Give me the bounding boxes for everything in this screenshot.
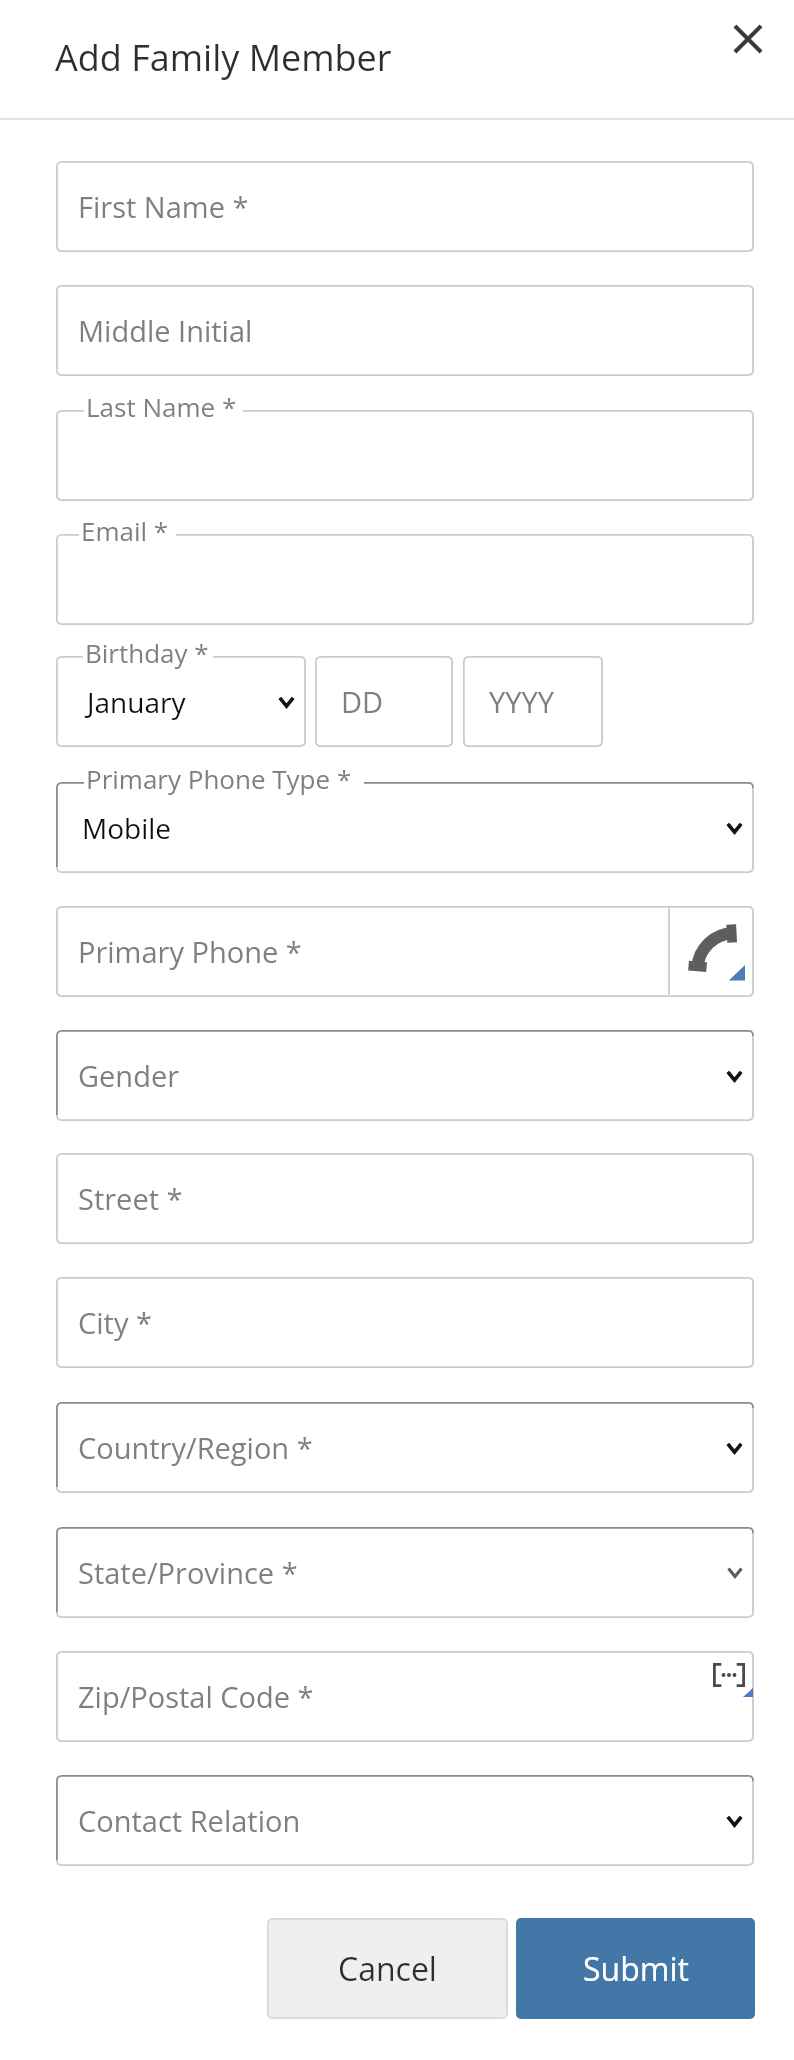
staticText: January: [87, 683, 186, 721]
staticText: Birthday *: [85, 635, 209, 670]
button[interactable]: [56, 410, 754, 501]
staticText: Submit: [583, 1947, 689, 1991]
button[interactable]: YYYY: [463, 656, 603, 747]
button[interactable]: First Name *: [56, 161, 754, 252]
staticText: Middle Initial: [78, 311, 253, 350]
button[interactable]: Middle Initial: [56, 285, 754, 376]
staticText: Country/Region *: [78, 1428, 313, 1467]
staticText: Gender: [78, 1056, 180, 1095]
button[interactable]: [56, 534, 754, 625]
button[interactable]: Country/Region *: [56, 1402, 754, 1493]
button[interactable]: Close: [718, 9, 778, 69]
staticText: Last Name *: [86, 389, 237, 424]
staticText: Primary Phone Type *: [86, 761, 352, 796]
button[interactable]: Scan: [711, 1661, 747, 1689]
button[interactable]: DD: [315, 656, 453, 747]
staticText: DD: [341, 682, 384, 721]
button[interactable]: Primary Phone *: [56, 906, 754, 997]
staticText: YYYY: [489, 682, 554, 721]
button[interactable]: Call: [669, 906, 754, 997]
button[interactable]: City *: [56, 1277, 754, 1368]
button[interactable]: Submit: [516, 1918, 755, 2019]
staticText: State/Province *: [78, 1553, 298, 1592]
staticText: Street *: [78, 1179, 183, 1218]
button[interactable]: January: [56, 656, 306, 747]
button[interactable]: Gender: [56, 1030, 754, 1121]
button[interactable]: Cancel: [267, 1918, 508, 2019]
staticText: Contact Relation: [78, 1801, 301, 1840]
button[interactable]: Zip/Postal Code *: [56, 1651, 754, 1742]
staticText: Primary Phone *: [78, 932, 302, 971]
button[interactable]: Street *: [56, 1153, 754, 1244]
staticText: Add Family Member: [55, 33, 392, 82]
button[interactable]: Contact Relation: [56, 1775, 754, 1866]
staticText: First Name *: [78, 187, 249, 226]
staticText: Email *: [81, 513, 169, 548]
staticText: Zip/Postal Code *: [78, 1677, 314, 1716]
staticText: Mobile: [82, 809, 172, 847]
staticText: Cancel: [338, 1947, 437, 1991]
button[interactable]: Mobile: [56, 782, 754, 873]
staticText: City *: [78, 1303, 152, 1342]
button[interactable]: State/Province *: [56, 1527, 754, 1618]
